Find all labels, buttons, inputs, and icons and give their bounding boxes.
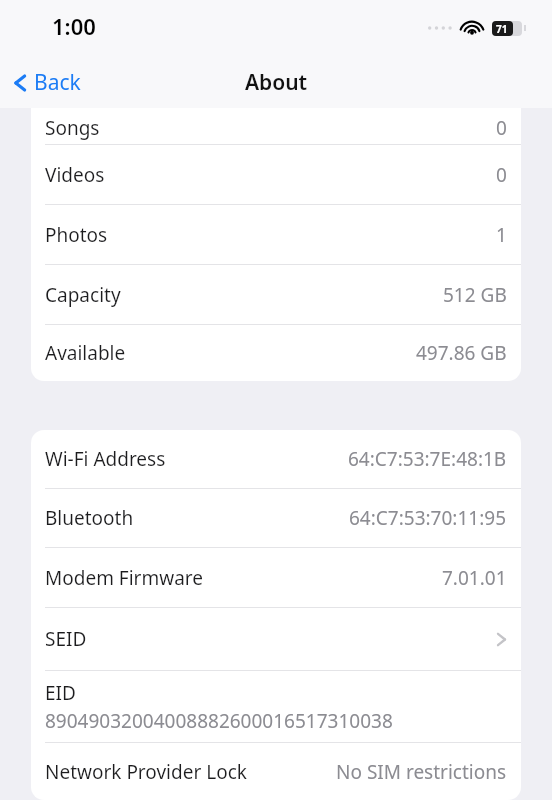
button[interactable]: Bluetooth bbox=[31, 489, 521, 547]
button[interactable]: Modem Firmware bbox=[31, 548, 521, 607]
staticText: Photos bbox=[45, 222, 108, 248]
button[interactable]: Available bbox=[31, 325, 521, 381]
staticText: EID bbox=[45, 680, 76, 706]
staticText: 64:C7:53:70:11:95 bbox=[349, 505, 507, 531]
staticText: 7.01.01 bbox=[442, 565, 507, 591]
button[interactable]: SEID bbox=[31, 608, 521, 670]
button[interactable]: Back bbox=[0, 62, 93, 103]
staticText: SEID bbox=[45, 626, 87, 652]
staticText: 1 bbox=[496, 222, 507, 248]
button[interactable]: Videos bbox=[31, 145, 521, 204]
staticText: 64:C7:53:7E:48:1B bbox=[348, 446, 507, 472]
staticText: 512 GB bbox=[443, 282, 507, 308]
staticText: Available bbox=[45, 340, 126, 366]
staticText: No SIM restrictions bbox=[336, 759, 507, 785]
staticText: 89049032004008882600016517310038 bbox=[45, 708, 393, 734]
staticText: Modem Firmware bbox=[45, 565, 203, 591]
staticText: Capacity bbox=[45, 282, 121, 308]
button[interactable]: Capacity bbox=[31, 265, 521, 324]
staticText: 1:00 bbox=[52, 11, 96, 41]
staticText: 0 bbox=[496, 115, 507, 140]
staticText: Network Provider Lock bbox=[45, 759, 247, 785]
button[interactable]: Network Provider Lock bbox=[31, 743, 521, 800]
button[interactable]: Photos bbox=[31, 205, 521, 264]
staticText: Wi-Fi Address bbox=[45, 446, 166, 472]
staticText: Back bbox=[34, 68, 81, 97]
staticText: 0 bbox=[496, 162, 507, 188]
staticText: Songs bbox=[45, 115, 100, 140]
staticText: 497.86 GB bbox=[416, 340, 507, 366]
button[interactable]: EID bbox=[31, 671, 521, 742]
staticText: Videos bbox=[45, 162, 105, 188]
staticText: Bluetooth bbox=[45, 505, 134, 531]
staticText: 71 bbox=[496, 22, 508, 36]
button[interactable]: Wi-Fi Address bbox=[31, 430, 521, 488]
button[interactable]: Songs bbox=[31, 108, 521, 144]
staticText: About bbox=[245, 68, 308, 97]
other: Open SEID bbox=[496, 630, 507, 649]
